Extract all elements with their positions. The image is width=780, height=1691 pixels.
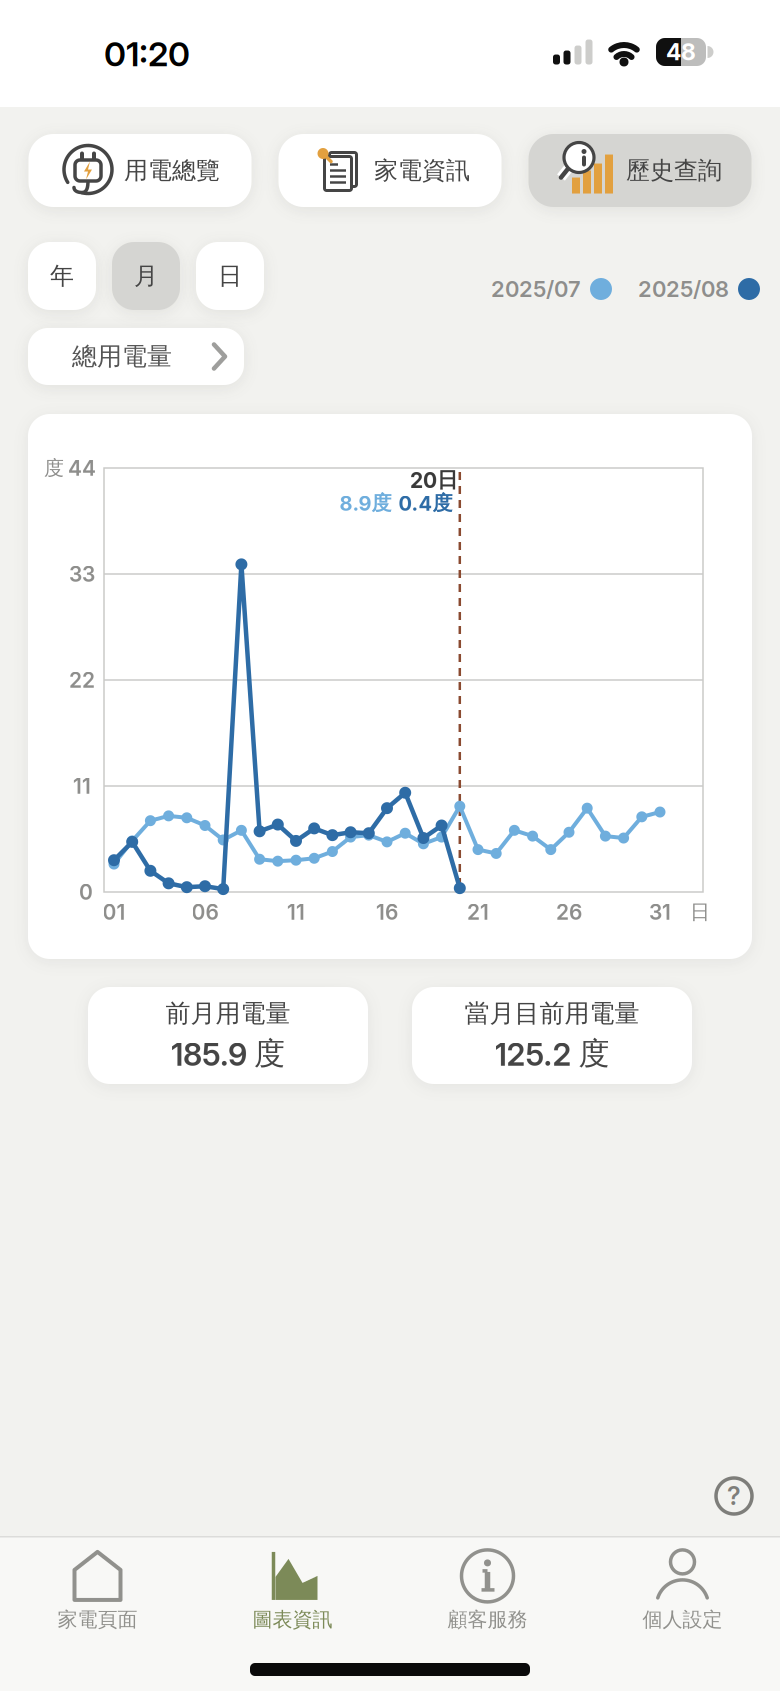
button[interactable]: 家電資訊	[278, 134, 501, 207]
staticText: 個人設定	[642, 1607, 722, 1632]
button[interactable]: 用電總覽	[28, 134, 251, 207]
staticText: ?	[727, 1481, 741, 1511]
staticText: 圖表資訊	[252, 1607, 332, 1632]
button[interactable]: 顧客服務	[390, 1545, 585, 1635]
button[interactable]: 年	[28, 242, 96, 310]
staticText: 21	[467, 899, 489, 925]
staticText: 0.4度	[398, 490, 452, 516]
staticText: 33	[69, 561, 95, 587]
staticText: 家電頁面	[57, 1607, 137, 1632]
staticText: 年	[50, 261, 74, 291]
staticText: 用電總覽	[124, 155, 220, 186]
staticText: 11	[287, 899, 305, 925]
staticText: 歷史查詢	[626, 155, 722, 186]
staticText: 31	[649, 899, 671, 925]
staticText: 2025/08	[638, 276, 729, 302]
staticText: 16	[376, 899, 398, 925]
staticText: 48	[666, 38, 696, 66]
button[interactable]: 家電頁面	[0, 1545, 195, 1635]
button[interactable]: 月	[112, 242, 180, 310]
button[interactable]: 歷史查詢	[528, 134, 751, 207]
staticText: 125.2 度	[494, 1034, 609, 1073]
staticText: 日	[218, 261, 242, 291]
staticText: 家電資訊	[374, 155, 470, 186]
staticText: 8.9度	[339, 490, 391, 516]
staticText: 26	[556, 899, 582, 925]
staticText: 2025/07	[491, 276, 581, 302]
staticText: 前月用電量	[165, 998, 290, 1029]
staticText: 01	[102, 899, 125, 925]
button[interactable]: 說明	[716, 1478, 752, 1514]
staticText: 月	[134, 261, 158, 291]
staticText: 185.9 度	[171, 1034, 285, 1073]
staticText: 0	[79, 879, 93, 905]
staticText: 11	[73, 773, 91, 799]
staticText: 總用電量	[72, 341, 172, 372]
staticText: 01:20	[104, 33, 190, 74]
button[interactable]: 圖表資訊	[195, 1545, 390, 1635]
button[interactable]: 個人設定	[585, 1545, 780, 1635]
staticText: 20日	[410, 467, 458, 493]
staticText: 當月目前用電量	[464, 998, 639, 1029]
staticText: 日	[690, 899, 710, 925]
staticText: 06	[191, 899, 218, 925]
staticText: 44	[68, 455, 96, 481]
staticText: 顧客服務	[447, 1607, 527, 1632]
staticText: 22	[69, 667, 95, 693]
button[interactable]: 日	[196, 242, 264, 310]
staticText: 度	[44, 455, 64, 481]
button[interactable]: 總用電量	[28, 328, 244, 385]
